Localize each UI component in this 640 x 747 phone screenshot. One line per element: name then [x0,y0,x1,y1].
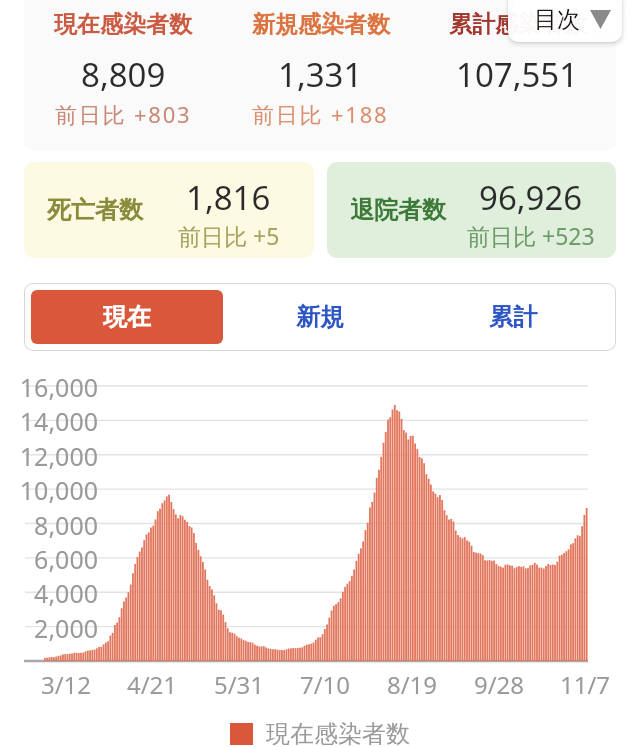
other: Table of contents [590,10,611,29]
staticText: 1,331 [278,52,363,97]
staticText: 7/10 [280,668,370,701]
staticText: 5/31 [194,668,284,701]
staticText: 8/19 [367,668,457,701]
staticText: 前日比 +5 [178,220,280,251]
staticText: 8,809 [81,52,166,97]
staticText: 前日比 +188 [252,99,389,129]
staticText: 4/21 [107,668,197,701]
staticText: 累計感染者数 [449,10,587,39]
button[interactable]: 死亡者数 [24,162,314,258]
staticText: 現在感染者数 [54,10,192,39]
staticText: 107,551 [456,52,579,97]
staticText: 9/28 [454,668,544,701]
staticText: 新規 [296,302,344,332]
staticText: 前日比 +803 [55,99,192,129]
staticText: 死亡者数 [47,195,143,225]
button[interactable]: 新規 [223,290,416,344]
staticText: 3/12 [21,668,111,701]
staticText: 退院者数 [350,195,446,225]
staticText: 14,000 [0,404,98,438]
staticText: 6,000 [0,542,98,576]
staticText: 現在感染者数 [266,719,410,747]
button[interactable]: 累計 [416,290,609,344]
staticText: 累計 [489,302,537,332]
staticText: 12,000 [0,439,98,473]
staticText: 8,000 [0,508,98,542]
staticText: 前日比 +523 [467,220,595,251]
button[interactable]: 退院者数 [327,162,616,258]
staticText: 16,000 [0,370,98,404]
staticText: 11/7 [540,668,630,701]
staticText: 1,816 [186,175,271,220]
button[interactable]: 目次 [508,0,622,42]
staticText: 現在 [103,302,151,332]
staticText: 96,926 [479,175,583,220]
staticText: 10,000 [0,473,98,507]
staticText: 4,000 [0,576,98,610]
button[interactable]: 現在 [31,290,223,344]
staticText: 新規感染者数 [252,10,390,39]
staticText: 目次 [534,5,580,34]
staticText: 2,000 [0,611,98,645]
